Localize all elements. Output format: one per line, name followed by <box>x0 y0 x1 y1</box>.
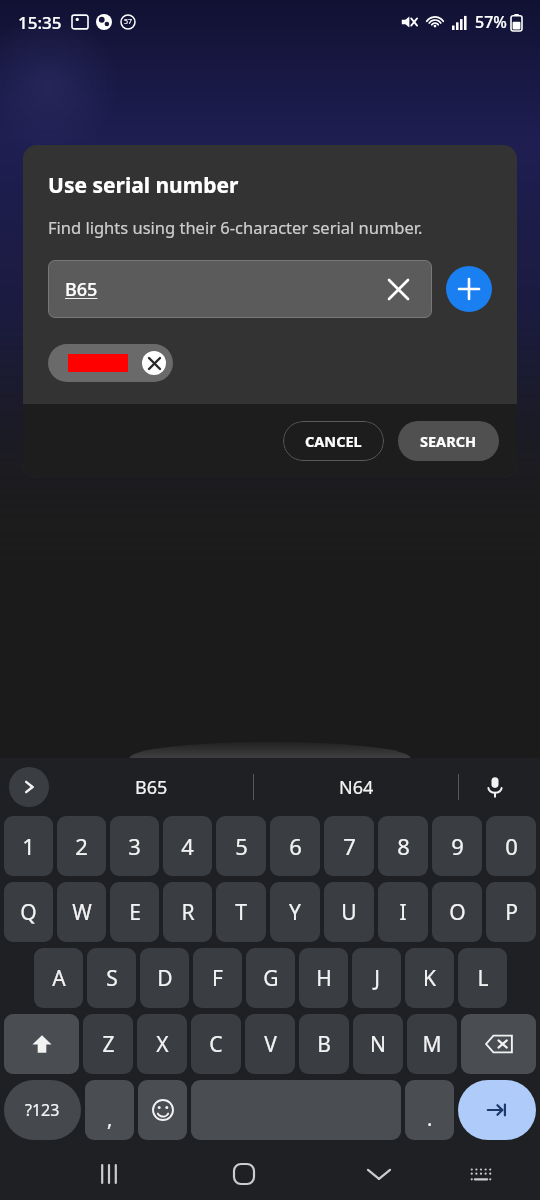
staticText: 57 <box>124 17 133 27</box>
button[interactable]: J <box>352 948 401 1008</box>
staticText: Z <box>102 1030 115 1059</box>
staticText: N64 <box>339 775 374 800</box>
button[interactable]: 7 <box>324 816 374 876</box>
button[interactable]: T <box>216 882 266 942</box>
button[interactable]: M <box>407 1014 457 1074</box>
staticText: , <box>107 1105 113 1132</box>
button[interactable]: A <box>34 948 83 1008</box>
button[interactable]: Home <box>218 1148 270 1200</box>
staticText: B <box>317 1030 331 1059</box>
button[interactable]: I <box>378 882 428 942</box>
staticText: V <box>264 1030 277 1059</box>
button[interactable]: 8 <box>378 816 428 876</box>
staticText: 9 <box>451 831 464 861</box>
button[interactable]: N64 <box>254 758 458 816</box>
button[interactable]: Z <box>83 1014 133 1074</box>
staticText: F <box>212 964 223 993</box>
staticText: . <box>427 1105 433 1132</box>
button[interactable]: Change keyboard <box>455 1148 507 1200</box>
button[interactable]: 3 <box>110 816 159 876</box>
button[interactable]: B65 <box>49 758 253 816</box>
button[interactable]: Enter <box>458 1080 536 1140</box>
staticText: C <box>209 1030 223 1059</box>
staticText: CANCEL <box>305 431 362 451</box>
staticText: H <box>316 964 332 993</box>
button[interactable]: Expand toolbar <box>9 767 49 807</box>
staticText: P <box>505 898 518 927</box>
staticText: L <box>477 964 489 993</box>
staticText: SEARCH <box>420 431 477 451</box>
staticText: N <box>370 1030 386 1059</box>
staticText: B65 <box>135 775 168 800</box>
staticText: 4 <box>181 831 194 861</box>
staticText: J <box>374 964 380 993</box>
staticText: E <box>129 898 141 927</box>
button[interactable]: S <box>87 948 136 1008</box>
button[interactable]: Remove <box>142 351 166 375</box>
staticText: Find lights using their 6-character seri… <box>48 216 423 238</box>
staticText: 3 <box>128 831 141 861</box>
button[interactable]: Q <box>4 882 53 942</box>
button[interactable]: 4 <box>163 816 212 876</box>
staticText: 5 <box>235 831 248 861</box>
button[interactable]: W <box>57 882 106 942</box>
staticText: T <box>235 898 247 927</box>
button[interactable]: P <box>486 882 536 942</box>
button[interactable]: Recents <box>83 1148 135 1200</box>
button[interactable]: SEARCH <box>398 421 499 461</box>
button[interactable]: Y <box>270 882 320 942</box>
button[interactable]: 1 <box>4 816 53 876</box>
staticText: Q <box>20 898 37 927</box>
button[interactable]: X <box>137 1014 187 1074</box>
button[interactable]: H <box>299 948 348 1008</box>
staticText: 2 <box>75 831 88 861</box>
button[interactable]: ?123 <box>4 1080 81 1140</box>
button[interactable]: N <box>353 1014 403 1074</box>
button[interactable]: 0 <box>486 816 536 876</box>
button[interactable]: Add serial number <box>446 266 492 312</box>
button[interactable]: E <box>110 882 159 942</box>
button[interactable]: 6 <box>270 816 320 876</box>
staticText: K <box>423 964 436 993</box>
button[interactable]: Backspace <box>461 1014 536 1074</box>
button[interactable]: Shift <box>4 1014 79 1074</box>
button[interactable]: G <box>246 948 295 1008</box>
button[interactable]: Remove <box>48 344 173 382</box>
button[interactable]: B <box>299 1014 349 1074</box>
button[interactable]: U <box>324 882 374 942</box>
staticText: 57% <box>475 11 507 33</box>
button[interactable]: . <box>405 1080 454 1140</box>
button[interactable]: Hide keyboard <box>353 1148 405 1200</box>
staticText: W <box>72 898 92 927</box>
button[interactable]: D <box>140 948 189 1008</box>
button[interactable]: L <box>458 948 507 1008</box>
button[interactable]: V <box>245 1014 295 1074</box>
button[interactable]: Emoji <box>138 1080 187 1140</box>
button[interactable]: Clear text <box>381 272 415 306</box>
staticText: ?123 <box>25 1099 60 1121</box>
staticText: 1 <box>22 831 35 861</box>
button[interactable]: Voice input <box>459 758 531 816</box>
button[interactable]: CANCEL <box>283 421 384 461</box>
staticText: U <box>341 898 357 927</box>
staticText: 0 <box>505 831 518 861</box>
staticText: R <box>181 898 195 927</box>
staticText: G <box>263 964 279 993</box>
staticText: S <box>106 964 118 993</box>
button[interactable]: , <box>85 1080 134 1140</box>
button[interactable]: R <box>163 882 212 942</box>
button[interactable]: O <box>432 882 482 942</box>
staticText: 8 <box>397 831 410 861</box>
staticText: D <box>157 964 173 993</box>
button[interactable]: 2 <box>57 816 106 876</box>
staticText: Use serial number <box>48 171 239 200</box>
button[interactable]: Space <box>191 1080 401 1140</box>
button[interactable]: F <box>193 948 242 1008</box>
button[interactable]: C <box>191 1014 241 1074</box>
button[interactable]: B65 <box>48 260 432 318</box>
button[interactable]: 5 <box>216 816 266 876</box>
button[interactable]: 9 <box>432 816 482 876</box>
button[interactable]: K <box>405 948 454 1008</box>
staticText: I <box>399 898 407 927</box>
staticText: M <box>422 1030 442 1059</box>
